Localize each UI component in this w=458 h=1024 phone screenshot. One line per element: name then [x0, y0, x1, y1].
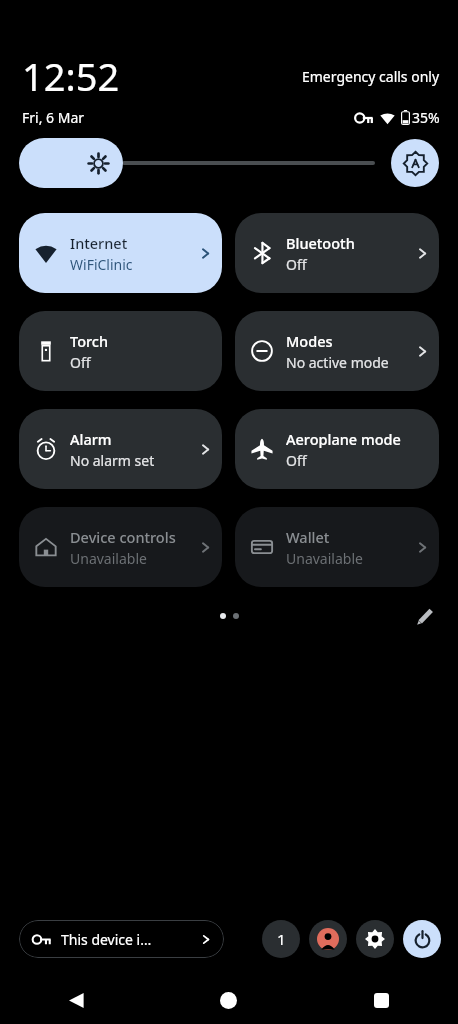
staticText: Device controls [70, 527, 176, 547]
button[interactable]: User account [309, 920, 347, 958]
button[interactable]: Internet [19, 213, 222, 293]
staticText: No active mode [286, 353, 389, 372]
button[interactable]: Home [152, 976, 305, 1024]
staticText: Unavailable [286, 549, 363, 568]
button[interactable]: This device i… [19, 920, 224, 958]
button[interactable]: Bluetooth [235, 213, 439, 293]
button[interactable]: Alarm [19, 409, 222, 489]
staticText: Torch [70, 331, 109, 351]
staticText: 35% [412, 108, 440, 127]
staticText: Aeroplane mode [286, 429, 401, 449]
button[interactable]: Edit tiles [410, 601, 440, 631]
staticText: Internet [70, 233, 128, 253]
staticText: Wallet [286, 527, 330, 547]
staticText: Emergency calls only [302, 67, 440, 86]
staticText: 1 [277, 929, 286, 949]
button[interactable]: Recents [305, 976, 458, 1024]
staticText: Alarm [70, 429, 112, 449]
button[interactable]: Back [0, 976, 152, 1024]
staticText: This device i… [61, 930, 152, 949]
button[interactable]: Aeroplane mode [235, 409, 439, 489]
button[interactable]: Auto brightness [391, 139, 439, 187]
button[interactable]: Settings [356, 920, 394, 958]
staticText: Bluetooth [286, 233, 355, 253]
staticText: 12:52 [22, 50, 120, 102]
staticText: No alarm set [70, 451, 155, 470]
button[interactable]: Torch [19, 311, 222, 391]
staticText: WiFiClinic [70, 255, 133, 274]
staticText: Off [286, 451, 307, 470]
staticText: Unavailable [70, 549, 147, 568]
button[interactable]: Brightness [19, 138, 379, 188]
button[interactable]: Wallet [235, 507, 439, 587]
staticText: Modes [286, 331, 333, 351]
staticText: Off [70, 353, 91, 372]
button[interactable]: Power [403, 920, 441, 958]
button[interactable]: 1 [262, 920, 300, 958]
button[interactable]: Device controls [19, 507, 222, 587]
staticText: Fri, 6 Mar [22, 108, 85, 127]
staticText: Off [286, 255, 307, 274]
button[interactable]: Modes [235, 311, 439, 391]
